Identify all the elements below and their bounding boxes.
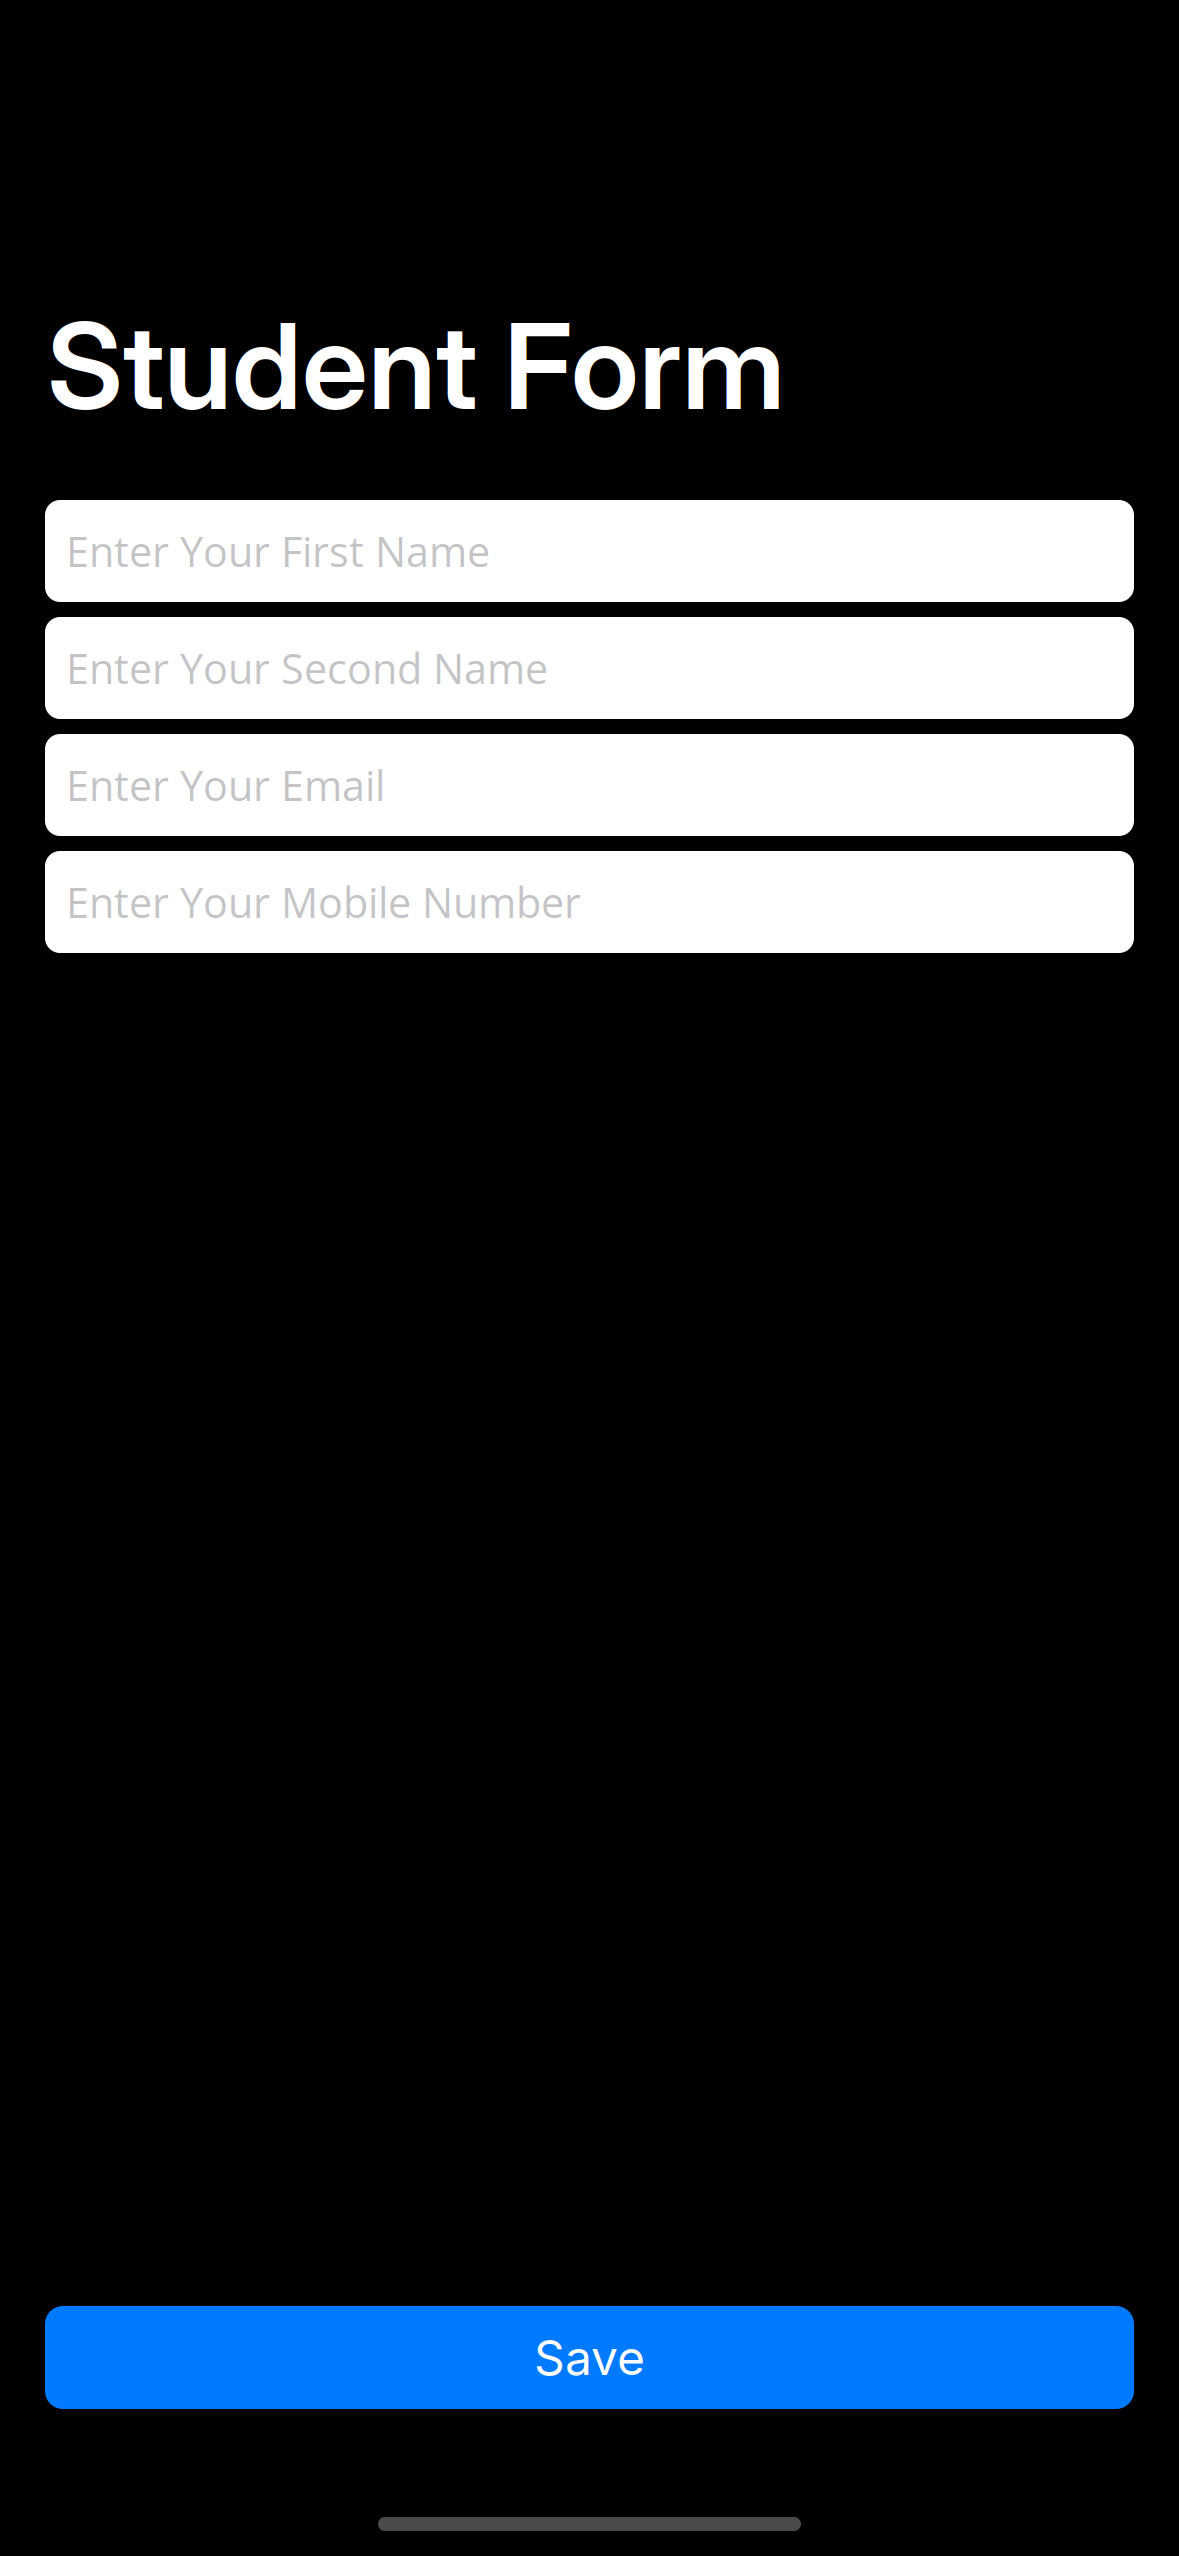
button[interactable]: Enter Your First Name <box>45 500 1134 602</box>
button[interactable]: Save <box>45 2306 1134 2409</box>
staticText: Enter Your First Name <box>66 523 490 579</box>
staticText: Enter Your Email <box>66 757 385 813</box>
staticText: Enter Your Mobile Number <box>66 874 581 930</box>
button[interactable]: Enter Your Second Name <box>45 617 1134 719</box>
button[interactable]: Enter Your Mobile Number <box>45 851 1134 953</box>
button[interactable]: Enter Your Email <box>45 734 1134 836</box>
staticText: Enter Your Second Name <box>66 640 548 696</box>
staticText: Student Form <box>47 294 785 438</box>
staticText: Save <box>534 2328 645 2387</box>
